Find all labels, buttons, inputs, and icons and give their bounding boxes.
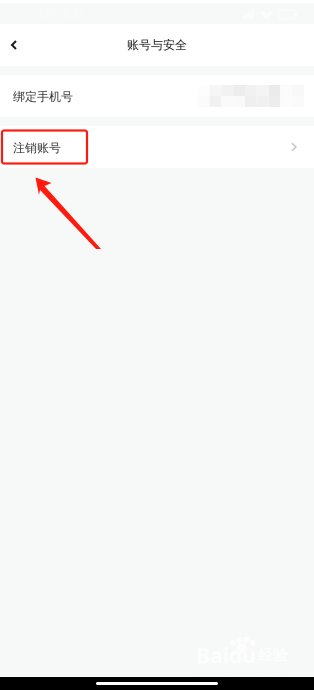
staticText: 注销账号 — [13, 141, 61, 155]
button[interactable]: 绑定手机号 — [0, 75, 314, 117]
staticText: 账号与安全 — [127, 38, 187, 52]
button[interactable]: Back — [0, 24, 28, 66]
staticText: 绑定手机号 — [13, 89, 73, 104]
button[interactable]: 注销账号 — [0, 126, 314, 168]
